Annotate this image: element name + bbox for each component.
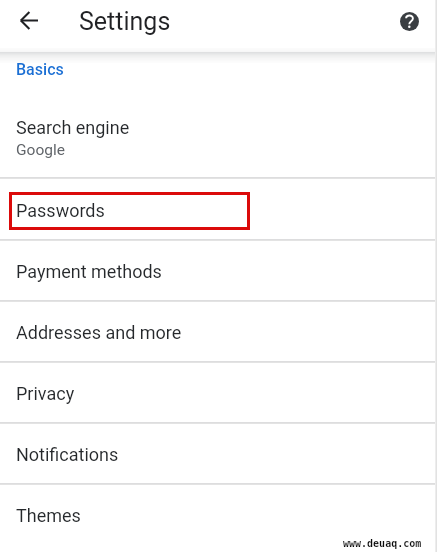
button[interactable]: Passwords: [0, 179, 437, 241]
button[interactable]: Privacy: [0, 363, 437, 424]
staticText: Basics: [16, 60, 64, 79]
button[interactable]: Navigate up: [5, 0, 53, 41]
button[interactable]: Themes: [0, 485, 437, 546]
button[interactable]: Addresses and more: [0, 302, 437, 363]
staticText: Addresses and more: [16, 322, 182, 343]
button[interactable]: Notifications: [0, 424, 437, 485]
staticText: www.deuaq.com: [343, 538, 422, 550]
staticText: Themes: [16, 505, 81, 526]
staticText: Notifications: [16, 444, 119, 465]
staticText: Settings: [79, 7, 171, 36]
staticText: Passwords: [16, 200, 105, 221]
staticText: Search engine: [16, 117, 130, 138]
button[interactable]: Search engine: [0, 79, 437, 179]
button[interactable]: Help and feedback: [388, 0, 430, 42]
staticText: Payment methods: [16, 261, 162, 282]
staticText: Privacy: [16, 383, 75, 404]
button[interactable]: Payment methods: [0, 241, 437, 302]
staticText: Google: [16, 141, 65, 159]
